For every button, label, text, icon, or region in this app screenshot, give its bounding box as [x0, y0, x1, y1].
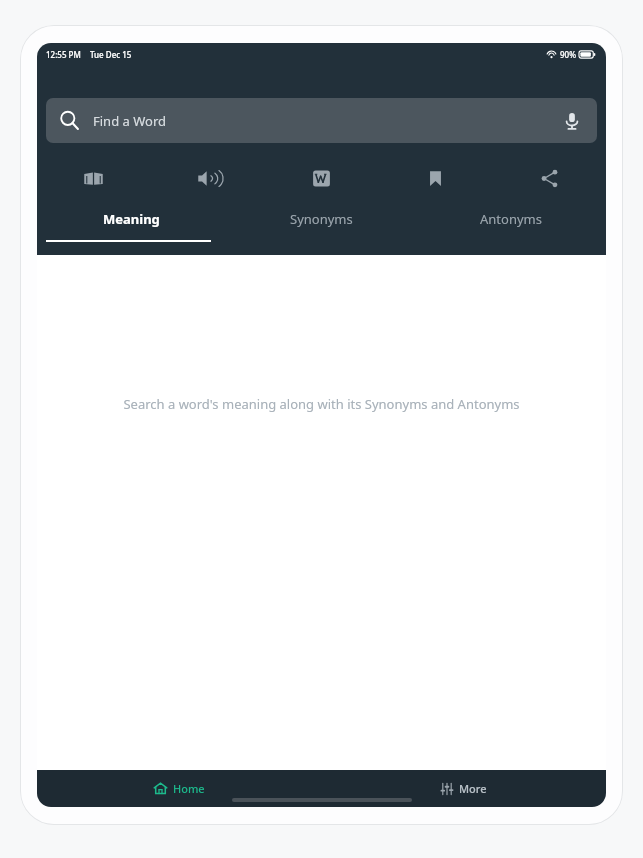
- button[interactable]: Find a Word: [46, 98, 597, 143]
- button[interactable]: Meaning: [37, 159, 150, 197]
- staticText: Search a word's meaning along with its S…: [123, 395, 520, 413]
- staticText: Tue Dec 15: [90, 49, 132, 60]
- staticText: Meaning: [103, 210, 160, 228]
- staticText: 90%: [560, 49, 576, 60]
- button[interactable]: Home: [37, 770, 321, 807]
- staticText: More: [459, 781, 487, 796]
- button[interactable]: Synonyms: [226, 203, 416, 242]
- staticText: Synonyms: [290, 210, 353, 228]
- button[interactable]: Share: [492, 159, 606, 197]
- staticText: 12:55 PM: [46, 49, 81, 60]
- staticText: Home: [173, 781, 205, 796]
- button[interactable]: Antonyms: [416, 203, 606, 242]
- button[interactable]: Pronounce: [150, 159, 264, 197]
- button[interactable]: Voice search: [560, 109, 584, 133]
- button[interactable]: Meaning: [37, 203, 226, 242]
- button[interactable]: Wikipedia: [264, 159, 378, 197]
- staticText: Find a Word: [93, 112, 166, 130]
- button[interactable]: Bookmark: [378, 159, 492, 197]
- button[interactable]: More: [321, 770, 606, 807]
- staticText: Antonyms: [480, 210, 542, 228]
